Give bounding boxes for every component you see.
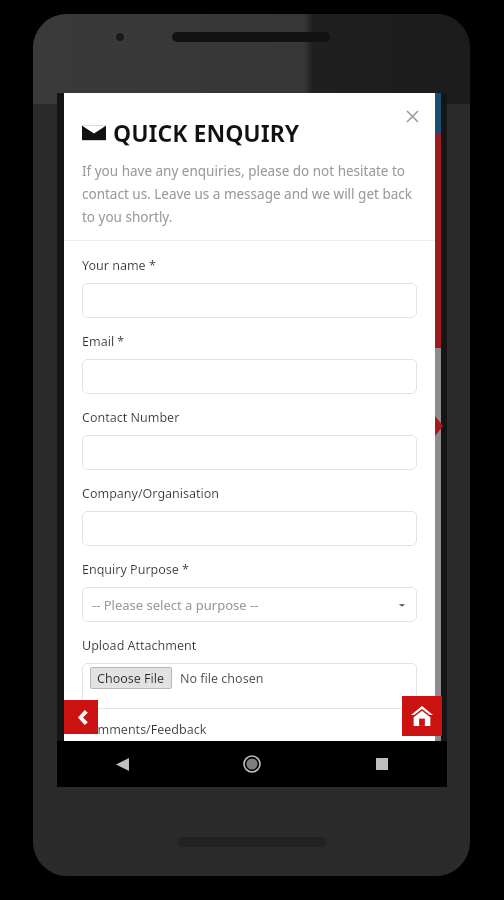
staticText: Enquiry Purpose * [82, 561, 189, 578]
button[interactable] [82, 511, 417, 546]
staticText: QUICK ENQUIRY [113, 117, 300, 148]
button[interactable]: Close [397, 101, 427, 131]
staticText: Contact Number [82, 409, 180, 426]
staticText: Your name * [82, 257, 156, 274]
staticText: -- Please select a purpose -- [92, 596, 259, 614]
staticText: Company/Organisation [82, 485, 220, 502]
button[interactable] [82, 359, 417, 394]
staticText: Email * [82, 333, 125, 350]
button[interactable]: Back [64, 700, 98, 734]
staticText: Comments/Feedback [82, 721, 207, 738]
staticText: Choose File [97, 670, 165, 687]
button[interactable]: Choose File [82, 663, 417, 709]
staticText: Upload Attachment [82, 637, 197, 654]
button[interactable] [82, 435, 417, 470]
button[interactable] [82, 283, 417, 318]
button[interactable]: Back [107, 749, 137, 779]
button[interactable]: Recent apps [367, 749, 397, 779]
button[interactable]: -- Please select a purpose -- [82, 587, 417, 622]
staticText: No file chosen [180, 670, 264, 687]
button[interactable]: Home [402, 696, 442, 736]
staticText: If you have any enquiries, please do not… [82, 162, 417, 226]
button[interactable]: Home [237, 749, 267, 779]
